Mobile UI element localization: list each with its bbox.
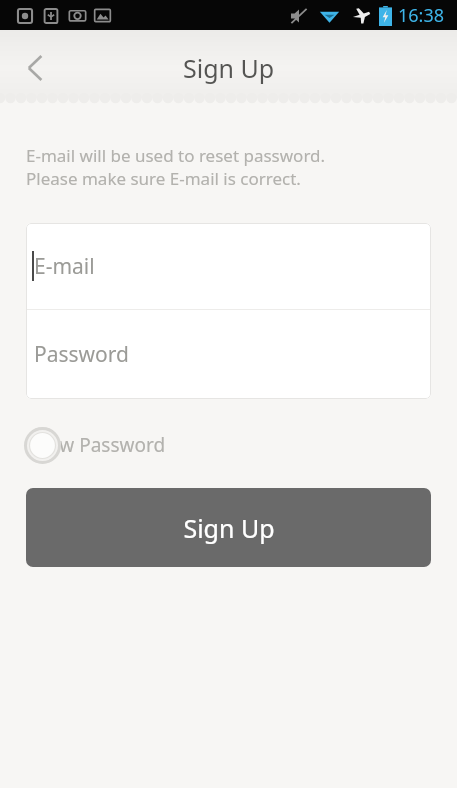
button[interactable]: E-mail	[26, 223, 431, 309]
button[interactable]: Sign Up	[26, 488, 431, 567]
button[interactable]: Password	[26, 310, 431, 399]
staticText: 16:38	[398, 3, 445, 28]
button[interactable]: Show Password	[26, 425, 226, 465]
staticText: Sign Up	[183, 511, 275, 545]
staticText: Password	[34, 340, 129, 369]
staticText: Sign Up	[183, 51, 275, 85]
button[interactable]: Back	[8, 40, 64, 96]
staticText: Show Password	[26, 432, 166, 458]
staticText: E-mail will be used to reset password. P…	[26, 144, 326, 190]
staticText: E-mail	[34, 252, 95, 281]
